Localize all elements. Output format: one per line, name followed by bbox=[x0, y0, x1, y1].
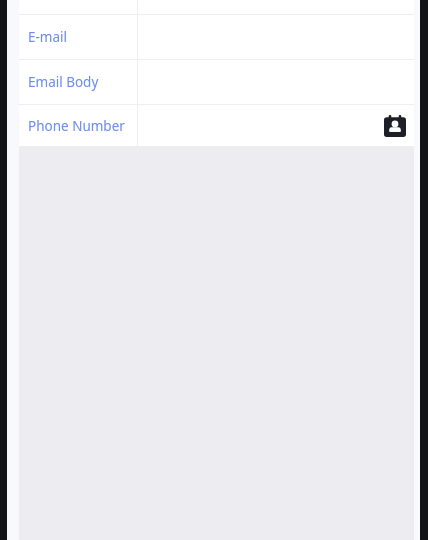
staticText: E-mail bbox=[28, 28, 68, 46]
button[interactable]: Pick contact bbox=[382, 113, 408, 139]
button[interactable]: E-mail bbox=[19, 15, 414, 59]
staticText: Phone Number bbox=[28, 117, 125, 135]
button[interactable]: Email Body bbox=[19, 60, 414, 104]
button[interactable]: Phone Number bbox=[19, 105, 414, 146]
staticText: Email Body bbox=[28, 73, 99, 91]
